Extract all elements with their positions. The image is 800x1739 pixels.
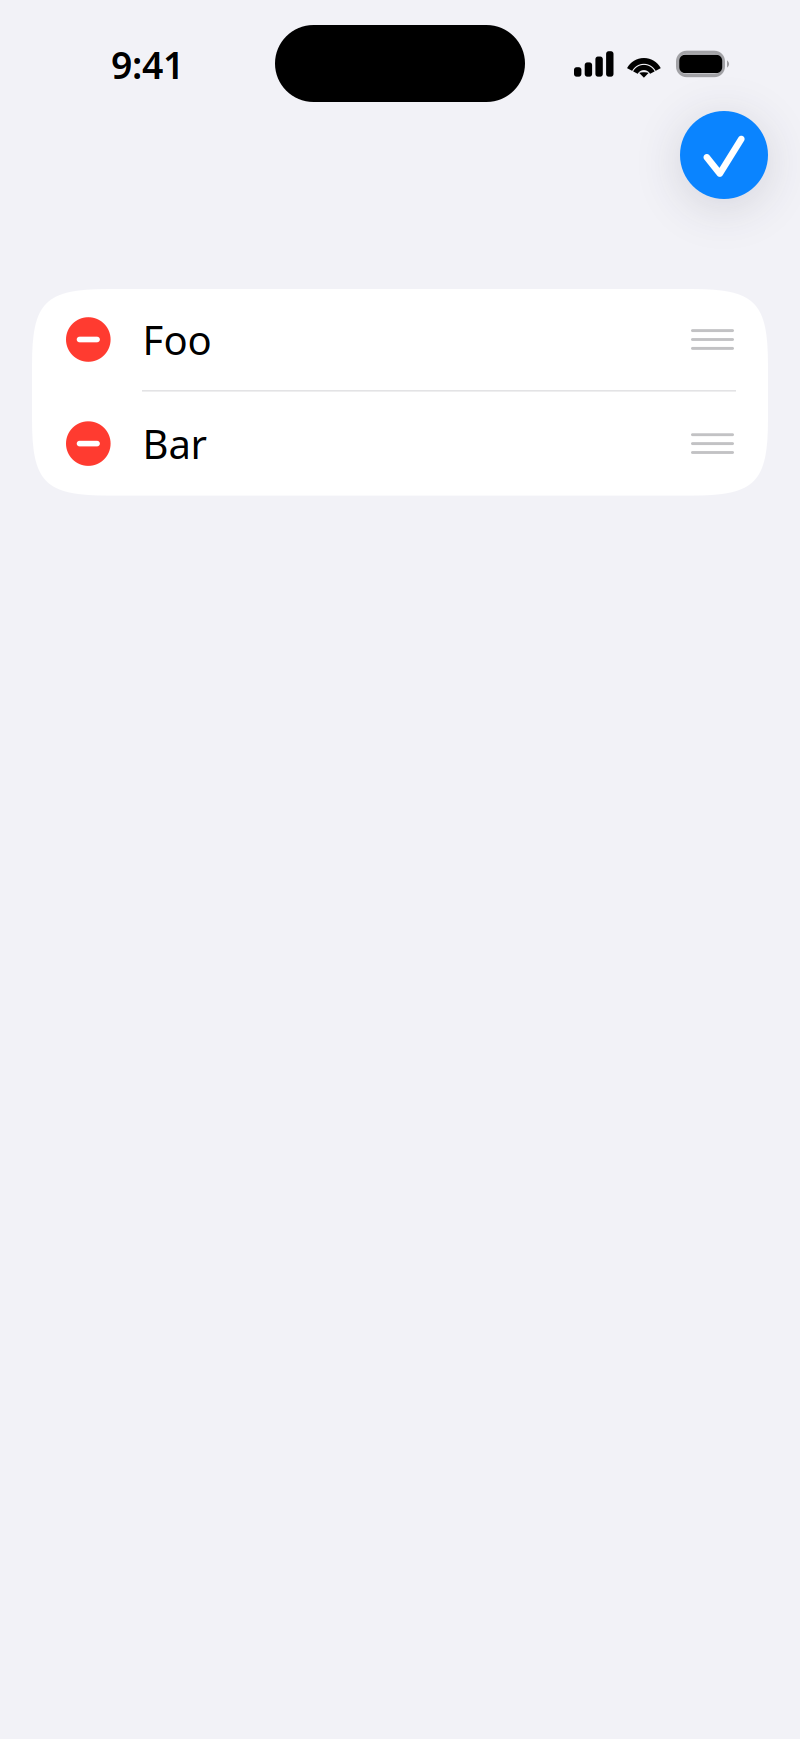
staticText: Bar bbox=[143, 417, 208, 470]
button[interactable]: Bar bbox=[143, 392, 661, 496]
button[interactable]: Done bbox=[680, 111, 768, 199]
button[interactable]: Reorder Foo bbox=[661, 289, 768, 390]
button[interactable]: Delete Foo bbox=[32, 289, 143, 390]
staticText: Foo bbox=[143, 313, 212, 366]
staticText: 9:41 bbox=[111, 40, 184, 89]
button[interactable]: Reorder Bar bbox=[661, 392, 768, 496]
button[interactable]: Foo bbox=[143, 289, 661, 390]
button[interactable]: Delete Bar bbox=[32, 392, 143, 496]
